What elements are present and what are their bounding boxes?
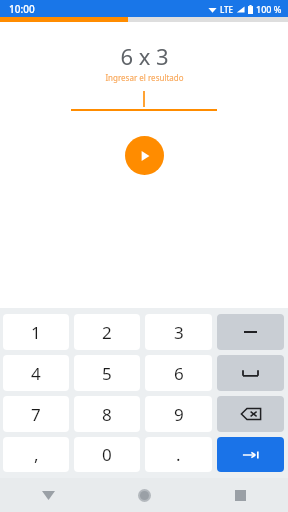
staticText: 10:00 — [9, 2, 35, 16]
staticText: 5 — [102, 362, 112, 385]
staticText: 4 — [31, 362, 41, 385]
button[interactable]: Enter — [217, 437, 284, 472]
staticText: Ingresar el resultado — [105, 72, 184, 83]
button[interactable]: 3 — [145, 314, 212, 350]
staticText: 100 % — [256, 3, 282, 15]
staticText: LTE — [220, 4, 234, 15]
button[interactable]: Recent apps — [192, 478, 288, 512]
button[interactable] — [71, 90, 217, 112]
staticText: 7 — [31, 403, 41, 426]
button[interactable]: 8 — [74, 396, 140, 432]
button[interactable]: Space — [217, 355, 284, 391]
staticText: 6 x 3 — [120, 41, 169, 71]
button[interactable]: 1 — [3, 314, 69, 350]
button[interactable]: Back — [0, 478, 96, 512]
button[interactable]: 0 — [74, 437, 140, 472]
staticText: , — [34, 443, 39, 466]
button[interactable]: 5 — [74, 355, 140, 391]
button[interactable]: 7 — [3, 396, 69, 432]
button[interactable]: Home — [96, 478, 192, 512]
button[interactable]: 9 — [145, 396, 212, 432]
button[interactable]: 2 — [74, 314, 140, 350]
staticText: 8 — [102, 403, 112, 426]
staticText: 9 — [174, 403, 184, 426]
button[interactable]: Play — [125, 136, 164, 175]
staticText: 3 — [174, 321, 184, 344]
staticText: 2 — [102, 321, 112, 344]
button[interactable]: , — [3, 437, 69, 472]
button[interactable]: Backspace — [217, 396, 284, 432]
button[interactable]: Minus — [217, 314, 284, 350]
staticText: . — [176, 443, 181, 466]
button[interactable]: 6 — [145, 355, 212, 391]
staticText: 1 — [31, 321, 41, 344]
staticText: 0 — [102, 443, 112, 466]
button[interactable]: 4 — [3, 355, 69, 391]
staticText: 6 — [174, 362, 184, 385]
button[interactable]: . — [145, 437, 212, 472]
